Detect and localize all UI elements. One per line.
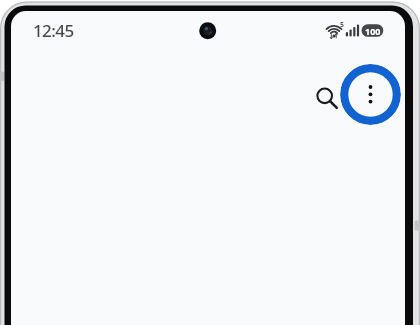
staticText: 12:45 xyxy=(33,19,74,42)
staticText: 5 xyxy=(340,20,345,30)
staticText: 100 xyxy=(365,25,381,37)
button[interactable] xyxy=(340,64,401,125)
button[interactable] xyxy=(305,76,345,116)
